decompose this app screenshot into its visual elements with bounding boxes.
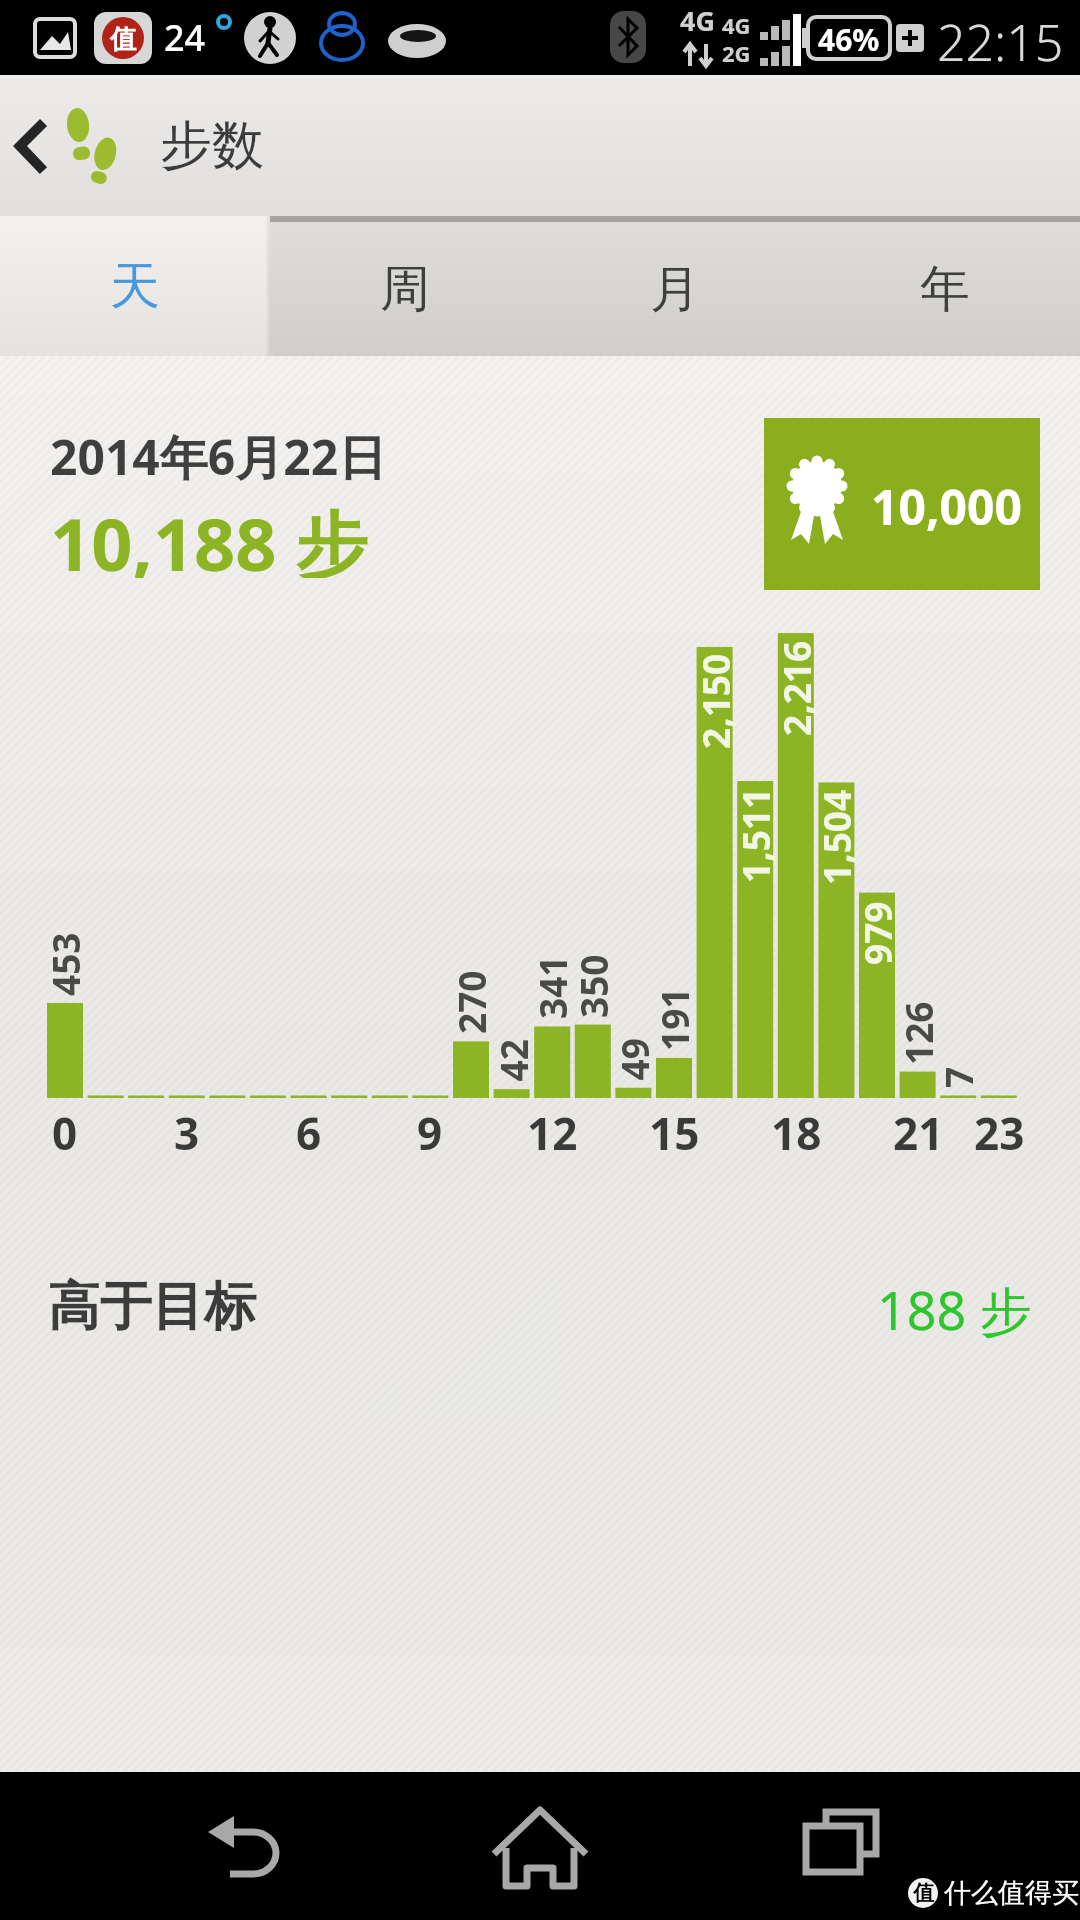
- staticText: 12: [527, 1103, 578, 1155]
- staticText: 22:15: [937, 8, 1064, 68]
- staticText: 10,000: [871, 474, 1022, 539]
- staticText: 46%: [818, 19, 880, 60]
- staticText: 49: [608, 1037, 658, 1080]
- button[interactable]: 天: [0, 216, 270, 356]
- button[interactable]: 年: [810, 216, 1080, 356]
- staticText: 值: [110, 23, 136, 56]
- staticText: 4G: [680, 2, 715, 38]
- staticText: 7: [933, 1066, 983, 1088]
- button[interactable]: [785, 1792, 895, 1902]
- staticText: 什么值得买: [944, 1876, 1079, 1910]
- staticText: 年: [920, 258, 970, 321]
- staticText: 2,150: [690, 653, 740, 749]
- button[interactable]: 步数: [0, 75, 1080, 216]
- staticText: 21: [893, 1103, 944, 1155]
- staticText: 453: [40, 932, 90, 996]
- staticText: 天: [110, 255, 160, 318]
- staticText: 3: [174, 1103, 200, 1155]
- button[interactable]: 月: [540, 216, 810, 356]
- staticText: 42: [487, 1038, 537, 1081]
- staticText: 月: [650, 258, 700, 321]
- staticText: 126: [893, 1001, 943, 1065]
- staticText: 350: [568, 954, 618, 1018]
- button[interactable]: 周: [270, 216, 540, 356]
- staticText: 2G: [722, 38, 751, 68]
- button[interactable]: [485, 1792, 595, 1902]
- staticText: 9: [417, 1103, 443, 1155]
- button[interactable]: 10,000: [764, 418, 1040, 590]
- staticText: 23: [974, 1103, 1025, 1155]
- staticText: 24: [164, 13, 206, 62]
- staticText: 341: [527, 955, 577, 1019]
- staticText: 2,216: [771, 640, 821, 736]
- staticText: 191: [649, 987, 699, 1051]
- staticText: 周: [380, 258, 430, 321]
- staticText: 值: [913, 1880, 934, 1906]
- staticText: 6: [296, 1103, 322, 1155]
- staticText: 10,188 步: [50, 494, 368, 578]
- staticText: 18: [771, 1103, 822, 1155]
- staticText: 979: [852, 901, 902, 965]
- staticText: 0: [52, 1103, 78, 1155]
- staticText: 高于目标: [48, 1274, 256, 1340]
- staticText: 188 步: [877, 1274, 1032, 1340]
- staticText: 4G: [722, 10, 751, 40]
- button[interactable]: [190, 1792, 300, 1902]
- staticText: 2014年6月22日: [50, 424, 387, 486]
- staticText: 15: [649, 1103, 700, 1155]
- staticText: 270: [446, 970, 496, 1034]
- staticText: 步数: [160, 113, 264, 177]
- staticText: 1,511: [730, 787, 780, 883]
- staticText: 1,504: [811, 789, 861, 885]
